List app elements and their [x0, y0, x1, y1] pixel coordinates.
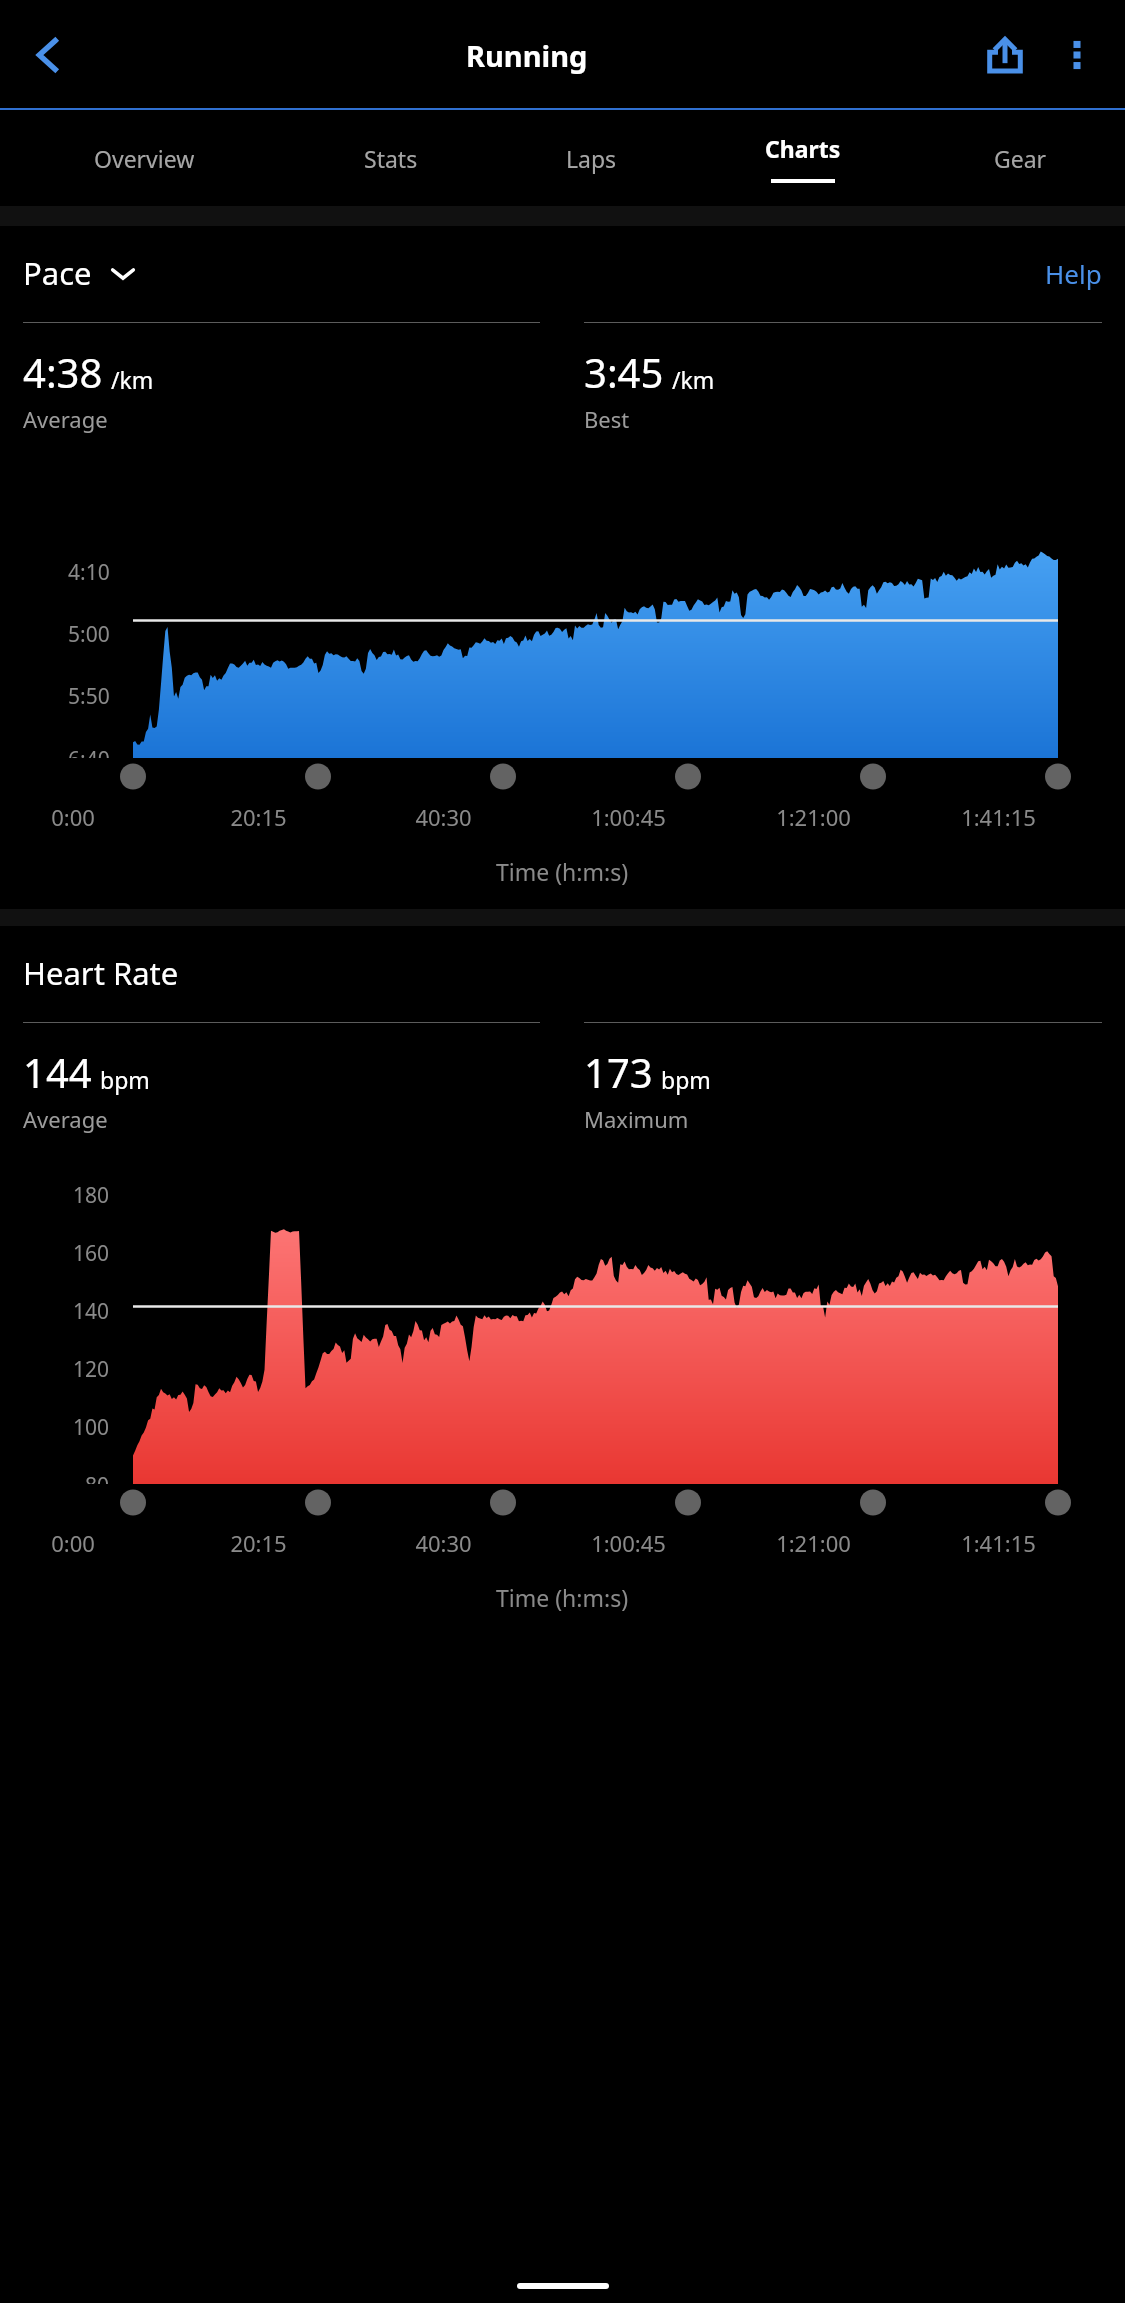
- staticText: Time (h:m:s): [496, 856, 629, 887]
- button[interactable]: Pace: [23, 252, 136, 294]
- button[interactable]: Stats: [288, 110, 493, 206]
- staticText: Maximum: [584, 1104, 689, 1134]
- staticText: Laps: [566, 143, 617, 174]
- staticText: 80: [85, 1471, 110, 1484]
- staticText: /km: [111, 364, 154, 395]
- staticText: 20:15: [230, 1528, 287, 1558]
- staticText: Pace: [23, 252, 92, 294]
- staticText: 1:00:45: [591, 1528, 666, 1558]
- staticText: 1:21:00: [776, 802, 851, 832]
- staticText: Time (h:m:s): [496, 1582, 629, 1613]
- staticText: 120: [73, 1355, 110, 1384]
- staticText: 160: [73, 1239, 110, 1268]
- staticText: 0:00: [51, 802, 95, 832]
- button[interactable]: Share: [969, 19, 1041, 91]
- staticText: Best: [584, 404, 630, 434]
- staticText: 1:41:15: [961, 802, 1036, 832]
- staticText: 6:40: [68, 745, 110, 758]
- staticText: 1:00:45: [591, 802, 666, 832]
- staticText: 20:15: [230, 802, 287, 832]
- staticText: 40:30: [415, 802, 472, 832]
- staticText: 3:45: [584, 345, 664, 399]
- staticText: bpm: [100, 1064, 150, 1095]
- button[interactable]: Laps: [493, 110, 689, 206]
- staticText: 0:00: [51, 1528, 95, 1558]
- staticText: Stats: [364, 143, 418, 174]
- button[interactable]: More options: [1041, 19, 1113, 91]
- staticText: 173: [584, 1045, 653, 1099]
- staticText: Help: [1045, 256, 1102, 291]
- staticText: 5:00: [68, 620, 110, 649]
- button[interactable]: Gear: [916, 110, 1125, 206]
- button[interactable]: Charts: [689, 110, 916, 206]
- staticText: 140: [73, 1297, 110, 1326]
- staticText: /km: [672, 364, 715, 395]
- staticText: 1:21:00: [776, 1528, 851, 1558]
- button[interactable]: Help: [1045, 256, 1102, 291]
- staticText: Charts: [765, 133, 841, 164]
- staticText: Heart Rate: [23, 952, 179, 994]
- staticText: bpm: [661, 1064, 711, 1095]
- staticText: 4:38: [23, 345, 103, 399]
- staticText: Average: [23, 404, 108, 434]
- staticText: Average: [23, 1104, 108, 1134]
- staticText: 144: [23, 1045, 92, 1099]
- staticText: Gear: [994, 143, 1047, 174]
- button[interactable]: Back: [12, 19, 84, 91]
- staticText: Running: [466, 36, 588, 75]
- staticText: 4:10: [68, 558, 110, 587]
- button[interactable]: Overview: [0, 110, 288, 206]
- staticText: 100: [73, 1413, 110, 1442]
- staticText: 1:41:15: [961, 1528, 1036, 1558]
- staticText: 180: [73, 1181, 110, 1210]
- staticText: 40:30: [415, 1528, 472, 1558]
- staticText: 5:50: [68, 682, 110, 711]
- staticText: Overview: [94, 143, 195, 174]
